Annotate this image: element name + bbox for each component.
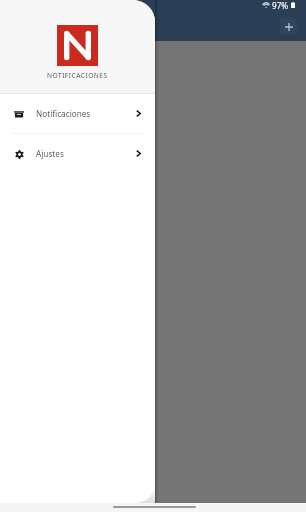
staticText: Notificaciones [36, 108, 91, 119]
button[interactable]: Add [280, 18, 297, 35]
button[interactable]: Notificaciones [0, 94, 155, 133]
button[interactable]: Ajustes [0, 134, 155, 173]
staticText: Ajustes [36, 148, 64, 159]
staticText: 97% [272, 0, 289, 9]
staticText: NOTIFICACIONES [47, 71, 108, 80]
